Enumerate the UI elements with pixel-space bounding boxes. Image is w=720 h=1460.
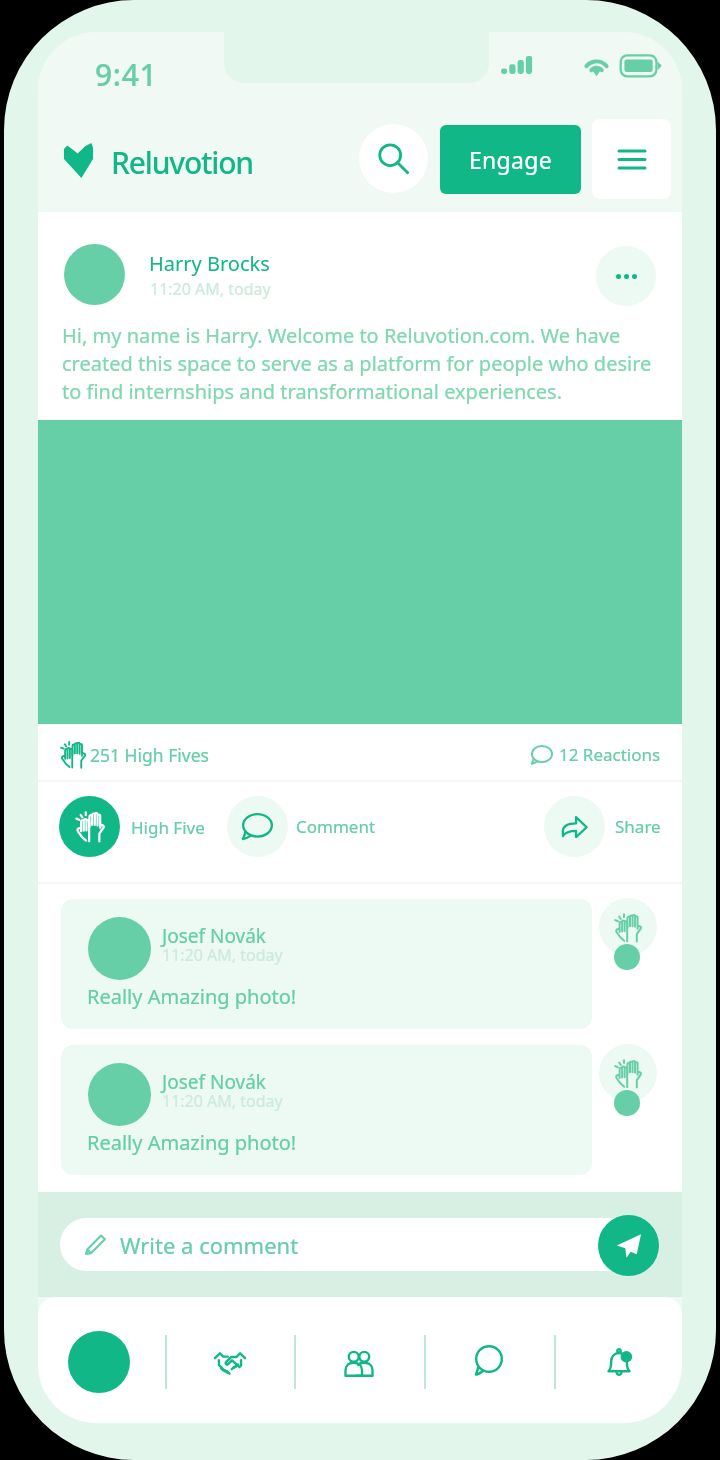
button[interactable]: Connections: [203, 1335, 257, 1389]
staticText: Write a comment: [120, 1230, 299, 1260]
staticText: Engage: [469, 144, 552, 175]
staticText: 251 High Fives: [90, 743, 209, 767]
staticText: 11:20 AM, today: [162, 944, 283, 966]
button[interactable]: Search: [359, 124, 428, 193]
staticText: Hi, my name is Harry. Welcome to Reluvot…: [62, 322, 662, 404]
staticText: Really Amazing photo!: [87, 1129, 297, 1156]
staticText: Josef Novák: [162, 1069, 266, 1095]
button[interactable]: [227, 796, 288, 857]
button[interactable]: Josef Novák: [61, 1045, 592, 1175]
button[interactable]: Comment: [296, 815, 376, 838]
button[interactable]: High five: [599, 898, 657, 956]
button[interactable]: High five: [599, 1044, 657, 1102]
staticText: 9:41: [95, 54, 158, 95]
button[interactable]: Share: [615, 815, 661, 838]
staticText: 11:20 AM, today: [150, 278, 271, 300]
staticText: Really Amazing photo!: [87, 983, 297, 1010]
button[interactable]: More options: [596, 246, 656, 306]
button[interactable]: Write a comment: [60, 1218, 654, 1271]
button[interactable]: Menu: [592, 119, 671, 199]
button[interactable]: Engage: [440, 125, 581, 194]
button[interactable]: [59, 796, 120, 857]
button[interactable]: Notifications: [592, 1335, 646, 1389]
button[interactable]: Messages: [462, 1335, 516, 1389]
staticText: Josef Novák: [162, 923, 266, 949]
button[interactable]: High Five: [131, 816, 205, 839]
staticText: Harry Brocks: [149, 250, 270, 277]
button[interactable]: [544, 796, 605, 857]
button[interactable]: Send: [598, 1215, 659, 1276]
staticText: 12 Reactions: [559, 743, 661, 766]
staticText: 11:20 AM, today: [162, 1090, 283, 1112]
button[interactable]: Profile: [68, 1331, 130, 1393]
button[interactable]: Groups: [332, 1335, 386, 1389]
staticText: Reluvotion: [111, 142, 253, 183]
button[interactable]: Josef Novák: [61, 899, 592, 1029]
